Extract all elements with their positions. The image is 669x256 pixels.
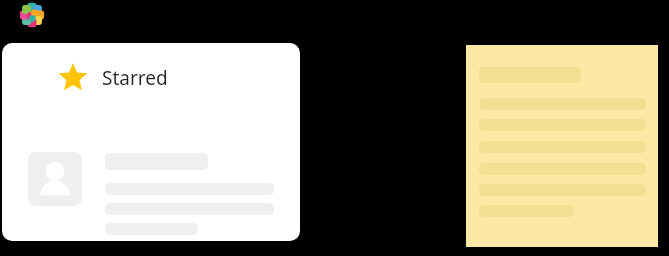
button[interactable] <box>466 45 658 247</box>
button[interactable]: Starred <box>2 43 300 241</box>
other: Starred <box>58 63 88 93</box>
button[interactable]: App logo <box>17 0 47 30</box>
staticText: Starred <box>102 65 168 91</box>
